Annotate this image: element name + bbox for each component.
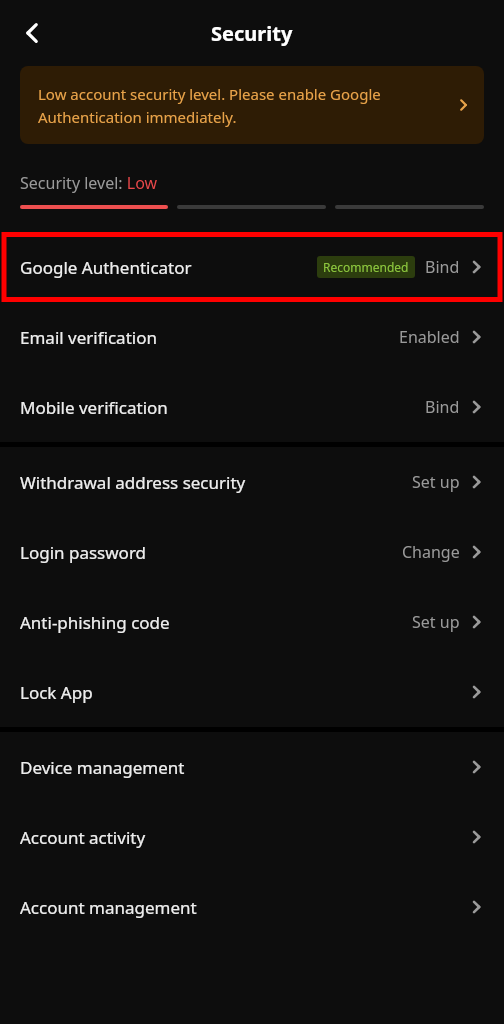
staticText: Mobile verification [20, 396, 168, 419]
staticText: Lock App [20, 681, 93, 704]
staticText: Bind [425, 396, 460, 418]
button[interactable]: Back [12, 11, 56, 55]
staticText: Enabled [399, 326, 460, 348]
staticText: Account activity [20, 826, 146, 849]
staticText: Security level: Low [20, 172, 158, 194]
button[interactable]: Login password [0, 517, 504, 587]
button[interactable]: Account activity [0, 802, 504, 872]
staticText: Google Authenticator [20, 256, 192, 279]
button[interactable]: Low account security level. Please enabl… [20, 66, 484, 144]
button[interactable]: Mobile verification [0, 372, 504, 442]
staticText: Anti-phishing code [20, 611, 170, 634]
staticText: Account management [20, 896, 197, 919]
button[interactable]: Lock App [0, 657, 504, 727]
staticText: Change [402, 541, 460, 563]
staticText: Recommended [323, 259, 409, 275]
button[interactable]: Anti-phishing code [0, 587, 504, 657]
staticText: Low account security level. Please enabl… [38, 84, 448, 127]
button[interactable]: Email verification [0, 302, 504, 372]
button[interactable]: Device management [0, 732, 504, 802]
staticText: Withdrawal address security [20, 471, 246, 494]
button[interactable]: Withdrawal address security [0, 447, 504, 517]
staticText: Security [211, 20, 293, 47]
staticText: Set up [412, 611, 460, 633]
staticText: Device management [20, 756, 185, 779]
staticText: Login password [20, 541, 147, 564]
staticText: Email verification [20, 326, 157, 349]
button[interactable]: Account management [0, 872, 504, 942]
staticText: Bind [425, 256, 460, 278]
staticText: Set up [412, 471, 460, 493]
button[interactable]: Google Authenticator [0, 232, 504, 302]
